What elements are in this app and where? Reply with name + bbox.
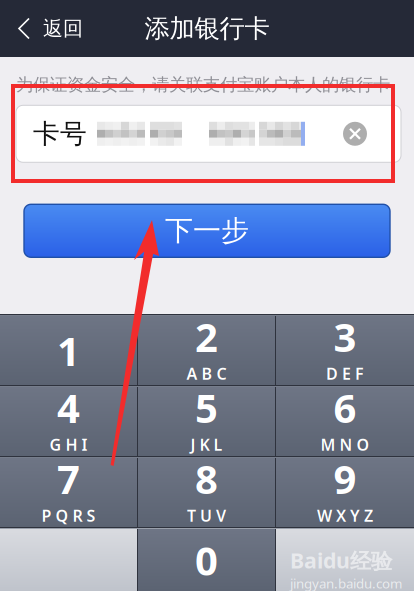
staticText: 5 — [195, 381, 218, 434]
button[interactable]: 1 — [0, 316, 137, 385]
staticText: D E F — [326, 363, 364, 384]
button[interactable]: 5 — [138, 387, 275, 456]
staticText: jingyan.baidu.com — [290, 574, 402, 591]
staticText: G H I — [49, 434, 87, 455]
staticText: 7 — [57, 452, 80, 505]
button[interactable]: 4 — [0, 387, 137, 456]
staticText: 为保证资金安全，请关联支付宝账户本人的银行卡 — [16, 74, 390, 95]
staticText: 4 — [57, 381, 80, 434]
staticText: J K L — [190, 434, 222, 455]
staticText: P Q R S — [41, 505, 95, 526]
button[interactable]: 6 — [276, 387, 414, 456]
staticText: 返回 — [43, 16, 83, 41]
staticText: T U V — [187, 505, 226, 526]
button[interactable]: 3 — [276, 316, 414, 385]
button[interactable]: 下一步 — [24, 204, 390, 257]
button[interactable]: Keypad blank key — [0, 529, 137, 591]
button[interactable]: 9 — [276, 458, 414, 527]
staticText: M N O — [320, 434, 369, 455]
staticText: 8 — [195, 452, 218, 505]
staticText: 添加银行卡 — [144, 13, 269, 44]
button[interactable]: 0 — [138, 529, 275, 591]
staticText: Baidu经验 — [290, 546, 392, 574]
button[interactable]: 2 — [138, 316, 275, 385]
staticText: 2 — [195, 310, 218, 363]
staticText: 3 — [333, 310, 356, 363]
staticText: 1 — [57, 324, 80, 377]
button[interactable]: 8 — [138, 458, 275, 527]
staticText: 9 — [333, 452, 356, 505]
button[interactable]: 返回 — [0, 0, 95, 57]
button[interactable]: Clear card number — [330, 107, 380, 161]
staticText: A B C — [186, 363, 226, 384]
staticText: 卡号 — [33, 117, 87, 150]
staticText: W X Y Z — [317, 505, 373, 526]
button[interactable]: 7 — [0, 458, 137, 527]
staticText: 0 — [195, 533, 218, 586]
button[interactable]: Keypad blank key — [276, 529, 414, 591]
staticText: 6 — [333, 381, 356, 434]
staticText: 下一步 — [165, 214, 249, 248]
